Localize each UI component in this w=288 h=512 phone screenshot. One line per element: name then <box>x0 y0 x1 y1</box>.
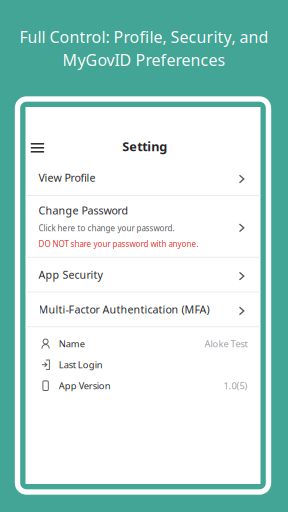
staticText: MyGovID Preferences <box>62 49 225 71</box>
staticText: DO NOT share your password with anyone. <box>38 239 198 249</box>
staticText: Name <box>59 337 85 350</box>
staticText: App Version <box>59 379 111 392</box>
staticText: App Security <box>38 267 102 282</box>
button[interactable]: App Security <box>25 258 260 292</box>
button[interactable]: View Profile <box>25 160 260 195</box>
staticText: Change Password <box>38 203 128 218</box>
staticText: Multi-Factor Authentication (MFA) <box>38 302 209 317</box>
staticText: Aloke Test <box>204 337 247 350</box>
staticText: View Profile <box>38 170 95 185</box>
staticText: Last Login <box>59 358 103 371</box>
button[interactable]: Multi-Factor Authentication (MFA) <box>25 292 260 326</box>
button[interactable]: Menu <box>25 135 52 158</box>
staticText: Setting <box>122 138 167 155</box>
staticText: Full Control: Profile, Security, and <box>19 26 268 48</box>
staticText: 1.0(5) <box>223 379 247 392</box>
staticText: Click here to change your password. <box>38 223 174 234</box>
button[interactable]: Change Password <box>25 196 260 257</box>
